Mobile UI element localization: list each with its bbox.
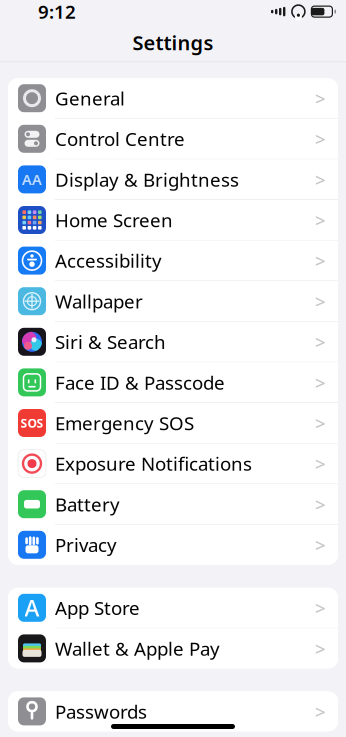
- staticText: Face ID & Passcode: [55, 370, 225, 395]
- staticText: A: [24, 593, 39, 623]
- staticText: Privacy: [55, 532, 117, 557]
- button[interactable]: Passwords: [8, 691, 338, 731]
- staticText: >: [315, 699, 326, 724]
- staticText: >: [315, 289, 326, 314]
- staticText: >: [315, 248, 326, 273]
- button[interactable]: Control Centre: [8, 119, 338, 159]
- staticText: Wallpaper: [55, 289, 143, 314]
- staticText: >: [315, 208, 326, 232]
- button[interactable]: Face ID & Passcode: [8, 362, 338, 402]
- staticText: Settings: [132, 29, 213, 56]
- staticText: SOS: [20, 415, 43, 431]
- staticText: General: [55, 86, 125, 111]
- staticText: Battery: [55, 492, 120, 517]
- staticText: >: [315, 370, 326, 395]
- staticText: Control Centre: [55, 126, 185, 151]
- button[interactable]: Battery: [8, 484, 338, 524]
- button[interactable]: AA: [8, 159, 338, 199]
- button[interactable]: Exposure Notifications: [8, 444, 338, 484]
- staticText: >: [315, 595, 326, 620]
- staticText: Emergency SOS: [55, 411, 194, 435]
- button[interactable]: Wallpaper: [8, 281, 338, 321]
- staticText: >: [315, 492, 326, 517]
- staticText: >: [315, 126, 326, 151]
- button[interactable]: Privacy: [8, 525, 338, 565]
- staticText: Siri & Search: [55, 329, 166, 354]
- button[interactable]: SOS: [8, 403, 338, 443]
- button[interactable]: Siri & Search: [8, 322, 338, 362]
- button[interactable]: Accessibility: [8, 241, 338, 281]
- button[interactable]: Wallet & Apple Pay: [8, 628, 338, 668]
- staticText: >: [315, 532, 326, 557]
- staticText: Accessibility: [55, 248, 162, 273]
- staticText: Home Screen: [55, 208, 173, 232]
- staticText: >: [315, 329, 326, 354]
- button[interactable]: A: [8, 588, 338, 628]
- staticText: Passwords: [55, 699, 147, 724]
- staticText: >: [315, 167, 326, 192]
- staticText: Exposure Notifications: [55, 451, 252, 476]
- staticText: AA: [22, 170, 42, 189]
- staticText: >: [315, 636, 326, 661]
- staticText: App Store: [55, 595, 140, 620]
- staticText: >: [315, 451, 326, 476]
- button[interactable]: General: [8, 78, 338, 118]
- staticText: >: [315, 411, 326, 435]
- staticText: 9:12: [38, 0, 76, 24]
- staticText: Display & Brightness: [55, 167, 239, 192]
- staticText: >: [315, 86, 326, 111]
- button[interactable]: Home Screen: [8, 200, 338, 240]
- staticText: Wallet & Apple Pay: [55, 636, 220, 661]
